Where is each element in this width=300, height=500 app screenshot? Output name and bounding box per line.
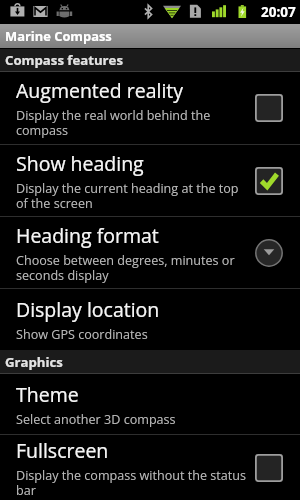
- staticText: Heading format: [16, 222, 159, 249]
- staticText: Theme: [16, 381, 79, 408]
- button[interactable]: Show heading: [0, 145, 300, 216]
- staticText: Display the current heading at the top o…: [16, 180, 251, 212]
- staticText: Augmented reality: [16, 77, 184, 104]
- staticText: Fullscreen: [16, 437, 109, 464]
- button[interactable]: Checkbox: [255, 454, 283, 482]
- staticText: Display location: [16, 296, 160, 323]
- staticText: Display the compass without the status b…: [16, 467, 251, 499]
- staticText: Graphics: [5, 353, 63, 371]
- staticText: Show GPS coordinates: [16, 326, 148, 343]
- button[interactable]: Checked checkbox: [255, 167, 283, 195]
- staticText: Show heading: [16, 150, 144, 177]
- staticText: Compass features: [5, 51, 123, 69]
- button[interactable]: Heading format: [0, 217, 300, 288]
- button[interactable]: Display location: [0, 289, 300, 350]
- button[interactable]: Open heading format list: [255, 239, 283, 267]
- button[interactable]: Checkbox: [255, 94, 283, 122]
- staticText: 20:07: [261, 3, 296, 21]
- staticText: Select another 3D compass: [16, 411, 176, 428]
- button[interactable]: Marine Compass: [0, 24, 300, 48]
- button[interactable]: Fullscreen: [0, 435, 300, 500]
- button[interactable]: Augmented reality: [0, 72, 300, 144]
- staticText: Marine Compass: [5, 27, 112, 45]
- staticText: Choose between degrees, minutes or secon…: [16, 252, 251, 284]
- button[interactable]: Theme: [0, 374, 300, 434]
- staticText: Display the real world behind the compas…: [16, 107, 251, 139]
